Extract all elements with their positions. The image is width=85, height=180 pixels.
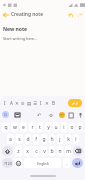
button[interactable]: Format xyxy=(2,100,8,106)
button[interactable]: m xyxy=(65,146,71,156)
staticText: ✓✓ xyxy=(72,101,79,106)
staticText: r xyxy=(31,124,34,131)
staticText: Creating note xyxy=(11,11,43,18)
staticText: ⚙ xyxy=(49,113,54,118)
button[interactable]: s xyxy=(16,134,23,144)
button[interactable]: Stickers xyxy=(14,112,20,118)
staticText: g xyxy=(42,136,46,143)
button[interactable]: d xyxy=(25,134,31,144)
button[interactable]: o xyxy=(69,122,75,132)
staticText: d xyxy=(26,136,30,143)
staticText: A xyxy=(10,100,13,106)
button[interactable]: Shift xyxy=(2,146,13,156)
button[interactable]: Redo xyxy=(75,10,84,19)
staticText: l xyxy=(75,136,77,143)
staticText: w xyxy=(13,124,17,131)
staticText: p xyxy=(78,124,82,131)
button[interactable]: c xyxy=(33,146,39,156)
button[interactable]: b xyxy=(49,146,55,156)
button[interactable]: Done xyxy=(68,99,82,107)
button[interactable]: Emoji xyxy=(15,158,22,168)
staticText: . xyxy=(66,160,68,167)
button[interactable]: Translate xyxy=(48,112,54,118)
button[interactable]: Format xyxy=(32,100,38,106)
button[interactable]: ?123 xyxy=(2,158,13,168)
button[interactable]: p xyxy=(77,122,83,132)
button[interactable]: v xyxy=(41,146,47,156)
staticText: ▤ xyxy=(27,101,32,106)
button[interactable]: g xyxy=(41,134,47,144)
staticText: ☰ xyxy=(33,101,38,106)
staticText: Start writing here… xyxy=(3,36,38,41)
staticText: e xyxy=(22,124,25,131)
button[interactable]: u xyxy=(53,122,59,132)
button[interactable]: z xyxy=(15,146,22,156)
button[interactable]: f xyxy=(33,134,39,144)
staticText: f xyxy=(35,136,37,143)
staticText: B xyxy=(52,100,55,106)
button[interactable]: l xyxy=(73,134,79,144)
button[interactable]: Format xyxy=(44,100,50,106)
button[interactable]: Format xyxy=(20,100,26,106)
button[interactable]: Format xyxy=(50,100,56,106)
button[interactable]: n xyxy=(57,146,63,156)
staticText: h xyxy=(50,136,54,143)
button[interactable]: Voice input xyxy=(77,112,83,118)
button[interactable]: i xyxy=(61,122,67,132)
button[interactable]: Enter xyxy=(72,158,83,168)
button[interactable]: Format xyxy=(38,100,44,106)
button[interactable]: Format xyxy=(26,100,32,106)
staticText: j xyxy=(59,136,61,143)
staticText: k xyxy=(67,136,70,143)
staticText: n xyxy=(58,148,62,155)
button[interactable]: Emoji xyxy=(58,111,65,118)
button[interactable]: Format xyxy=(14,100,20,106)
staticText: b xyxy=(50,148,54,155)
staticText: ✕ xyxy=(15,101,19,106)
staticText: English xyxy=(37,161,49,166)
button[interactable]: y xyxy=(45,122,51,132)
staticText: s xyxy=(18,136,21,143)
button[interactable]: English xyxy=(24,158,61,168)
button[interactable]: t xyxy=(37,122,43,132)
button[interactable]: Undo xyxy=(66,10,75,19)
button[interactable]: Clipboard xyxy=(68,112,74,118)
staticText: q xyxy=(4,124,8,131)
staticText: ↶ xyxy=(37,112,42,118)
staticText: a xyxy=(9,136,12,143)
staticText: o xyxy=(70,124,74,131)
staticText: y xyxy=(47,124,50,131)
staticText: c xyxy=(35,148,38,155)
button[interactable]: Backspace xyxy=(73,146,83,156)
staticText: v xyxy=(43,148,46,155)
staticText: ?123 xyxy=(4,161,12,166)
button[interactable]: x xyxy=(24,146,31,156)
staticText: x xyxy=(26,148,29,155)
button[interactable]: Format xyxy=(8,100,14,106)
button[interactable]: w xyxy=(11,122,18,132)
staticText: G xyxy=(4,112,7,117)
button[interactable]: Back xyxy=(1,10,11,20)
button[interactable]: q xyxy=(2,122,9,132)
staticText: u xyxy=(54,124,58,131)
staticText: i xyxy=(63,124,65,131)
staticText: New note xyxy=(3,26,28,33)
button[interactable]: r xyxy=(29,122,35,132)
button[interactable]: a xyxy=(7,134,14,144)
staticText: m xyxy=(66,148,71,155)
button[interactable]: k xyxy=(65,134,71,144)
button[interactable]: e xyxy=(20,122,27,132)
button[interactable]: h xyxy=(49,134,55,144)
button[interactable]: j xyxy=(57,134,63,144)
button[interactable]: GIF xyxy=(36,112,42,118)
staticText: I xyxy=(40,100,42,106)
staticText: ✕ xyxy=(45,101,49,106)
staticText: t xyxy=(39,124,41,131)
button[interactable]: Google xyxy=(2,111,9,118)
staticText: z xyxy=(17,148,20,155)
staticText: I xyxy=(4,100,6,106)
button[interactable]: . xyxy=(63,158,70,168)
staticText: ≡ xyxy=(21,101,25,106)
